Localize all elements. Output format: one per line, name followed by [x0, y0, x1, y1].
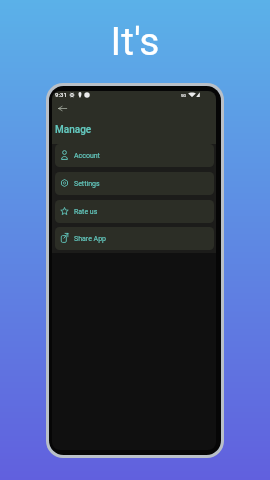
button[interactable]: Settings [55, 172, 214, 195]
button[interactable]: Rate us [55, 200, 214, 223]
button[interactable]: Share App [55, 227, 214, 250]
staticText: It's [0, 19, 270, 65]
staticText: Manage [55, 124, 92, 136]
staticText: Share App [74, 235, 107, 243]
staticText: 5G [181, 93, 186, 98]
staticText: Rate us [74, 208, 98, 216]
button[interactable]: Account [55, 144, 214, 167]
staticText: Account [74, 152, 100, 160]
button[interactable]: Back [58, 106, 67, 111]
staticText: Settings [74, 180, 100, 188]
staticText: 9:31 [55, 91, 67, 98]
